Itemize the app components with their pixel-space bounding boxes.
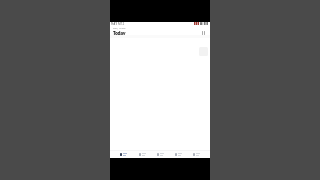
button[interactable]: More — [188, 151, 206, 158]
button[interactable]: Lists — [152, 151, 170, 158]
button[interactable]: Find — [170, 151, 188, 158]
button[interactable]: Today — [114, 151, 133, 158]
staticText: MON, 12 MAR — [113, 27, 126, 29]
staticText: M12 — [118, 22, 125, 25]
button[interactable]: More options — [200, 29, 208, 37]
other: Battery low — [194, 22, 199, 25]
button[interactable]: Next — [133, 151, 152, 158]
staticText: 9:41 — [111, 22, 117, 25]
staticText: Today — [113, 30, 126, 36]
